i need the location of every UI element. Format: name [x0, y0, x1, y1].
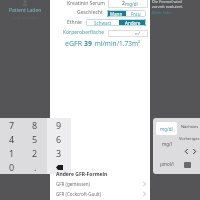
button[interactable]: Frau [126, 10, 146, 17]
staticText: 4 [9, 133, 15, 145]
staticText: 1 [9, 147, 15, 159]
button[interactable]: 2 [23, 146, 47, 160]
staticText: Vorheriges [179, 136, 200, 141]
button[interactable]: 2 [108, 0, 148, 8]
button[interactable]: Patient Laden [5, 0, 45, 20]
staticText: 7 [9, 119, 15, 131]
button[interactable]: 5 [23, 132, 47, 146]
button[interactable]: µmol/l [156, 158, 177, 170]
staticText: 5 [32, 133, 38, 145]
button[interactable]: Weiter [190, 148, 198, 155]
button[interactable]: 9 [47, 118, 71, 132]
staticText: eGFR [65, 39, 84, 48]
staticText: . [34, 161, 37, 173]
button[interactable]: GFR (Cockcroft-Gault) [50, 189, 150, 199]
button[interactable]: Mann [107, 10, 126, 17]
button[interactable]: 0 [0, 160, 23, 174]
staticText: Geschlecht [77, 9, 103, 16]
staticText: Nächstes [181, 124, 199, 129]
button[interactable]: mg/dl [156, 122, 177, 135]
staticText: 6 [56, 133, 62, 145]
staticText: Andere GFR-Formeln [56, 171, 108, 178]
staticText: m² [135, 31, 141, 36]
button[interactable]: Zurück [182, 148, 190, 155]
button[interactable]: mg/l [156, 138, 177, 150]
button[interactable]: Löschen [47, 160, 71, 174]
staticText: ml/min/1.73m² [93, 39, 141, 48]
button[interactable]: 7 [0, 118, 23, 132]
button[interactable]: Andere [119, 19, 146, 26]
staticText: GFR (gemessen) [56, 181, 90, 187]
button[interactable]: GFR (gemessen) [50, 179, 150, 189]
button[interactable]: Nächstes [179, 123, 200, 130]
button[interactable]: 6 [47, 132, 71, 146]
staticText: Kreatinin Serum [67, 0, 105, 7]
staticText: Andere [125, 20, 141, 26]
button[interactable]: 3 [47, 146, 71, 160]
staticText: 9 [56, 119, 62, 131]
button[interactable]: Vorheriges [179, 135, 200, 142]
staticText: Schwarz [94, 20, 112, 26]
button[interactable]: Fertig [184, 162, 191, 168]
staticText: Die Formel wird [152, 0, 182, 4]
button[interactable]: m² [108, 30, 148, 37]
staticText: Ethnie [67, 19, 82, 26]
staticText: zurzeit evaluiert. [152, 4, 184, 9]
staticText: 3 [56, 147, 62, 159]
staticText: Frau [131, 11, 141, 17]
staticText: GFR (Cockcroft-Gault) [56, 191, 102, 197]
staticText: Mann [110, 11, 123, 17]
staticText: µmol/l [160, 161, 174, 167]
button[interactable]: . [23, 160, 47, 174]
button[interactable]: Schwarz [86, 19, 119, 26]
staticText: 2 [122, 0, 125, 7]
button[interactable]: 4 [0, 132, 23, 146]
staticText: Patient Laden [9, 7, 42, 14]
staticText: 39 [84, 39, 93, 48]
staticText: 8 [32, 119, 38, 131]
staticText: 0 [9, 161, 15, 173]
staticText: Körperoberfläche [63, 29, 105, 36]
staticText: Mehr Info › [152, 10, 173, 15]
button[interactable]: 1 [0, 146, 23, 160]
staticText: mg/dl [125, 1, 138, 7]
button[interactable]: Die Formel wird [152, 0, 198, 15]
button[interactable]: 8 [23, 118, 47, 132]
staticText: 2 [32, 147, 38, 159]
staticText: mg/dl [160, 126, 173, 132]
staticText: mg/l [162, 141, 172, 147]
